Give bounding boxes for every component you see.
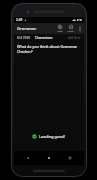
button[interactable]: Back: [21, 151, 35, 165]
button[interactable]: Home: [42, 151, 56, 165]
button[interactable]: More options: [77, 24, 82, 34]
button[interactable]: Copy: [55, 23, 64, 34]
button[interactable]: Recents: [63, 151, 77, 165]
button[interactable]: Loading good!: [14, 134, 84, 139]
staticText: What do you think about Grammar Checker?: [17, 44, 81, 54]
staticText: 3:49: [16, 18, 23, 22]
button[interactable]: Characters: [35, 35, 53, 40]
staticText: Copy: [57, 29, 63, 32]
staticText: Loading good!: [39, 134, 66, 139]
button[interactable]: 0/4 7000: [17, 36, 31, 40]
button[interactable]: Grammar: [17, 26, 37, 32]
button[interactable]: Add Note: [68, 36, 81, 40]
staticText: Check: [67, 29, 74, 32]
button[interactable]: Check: [66, 23, 75, 34]
